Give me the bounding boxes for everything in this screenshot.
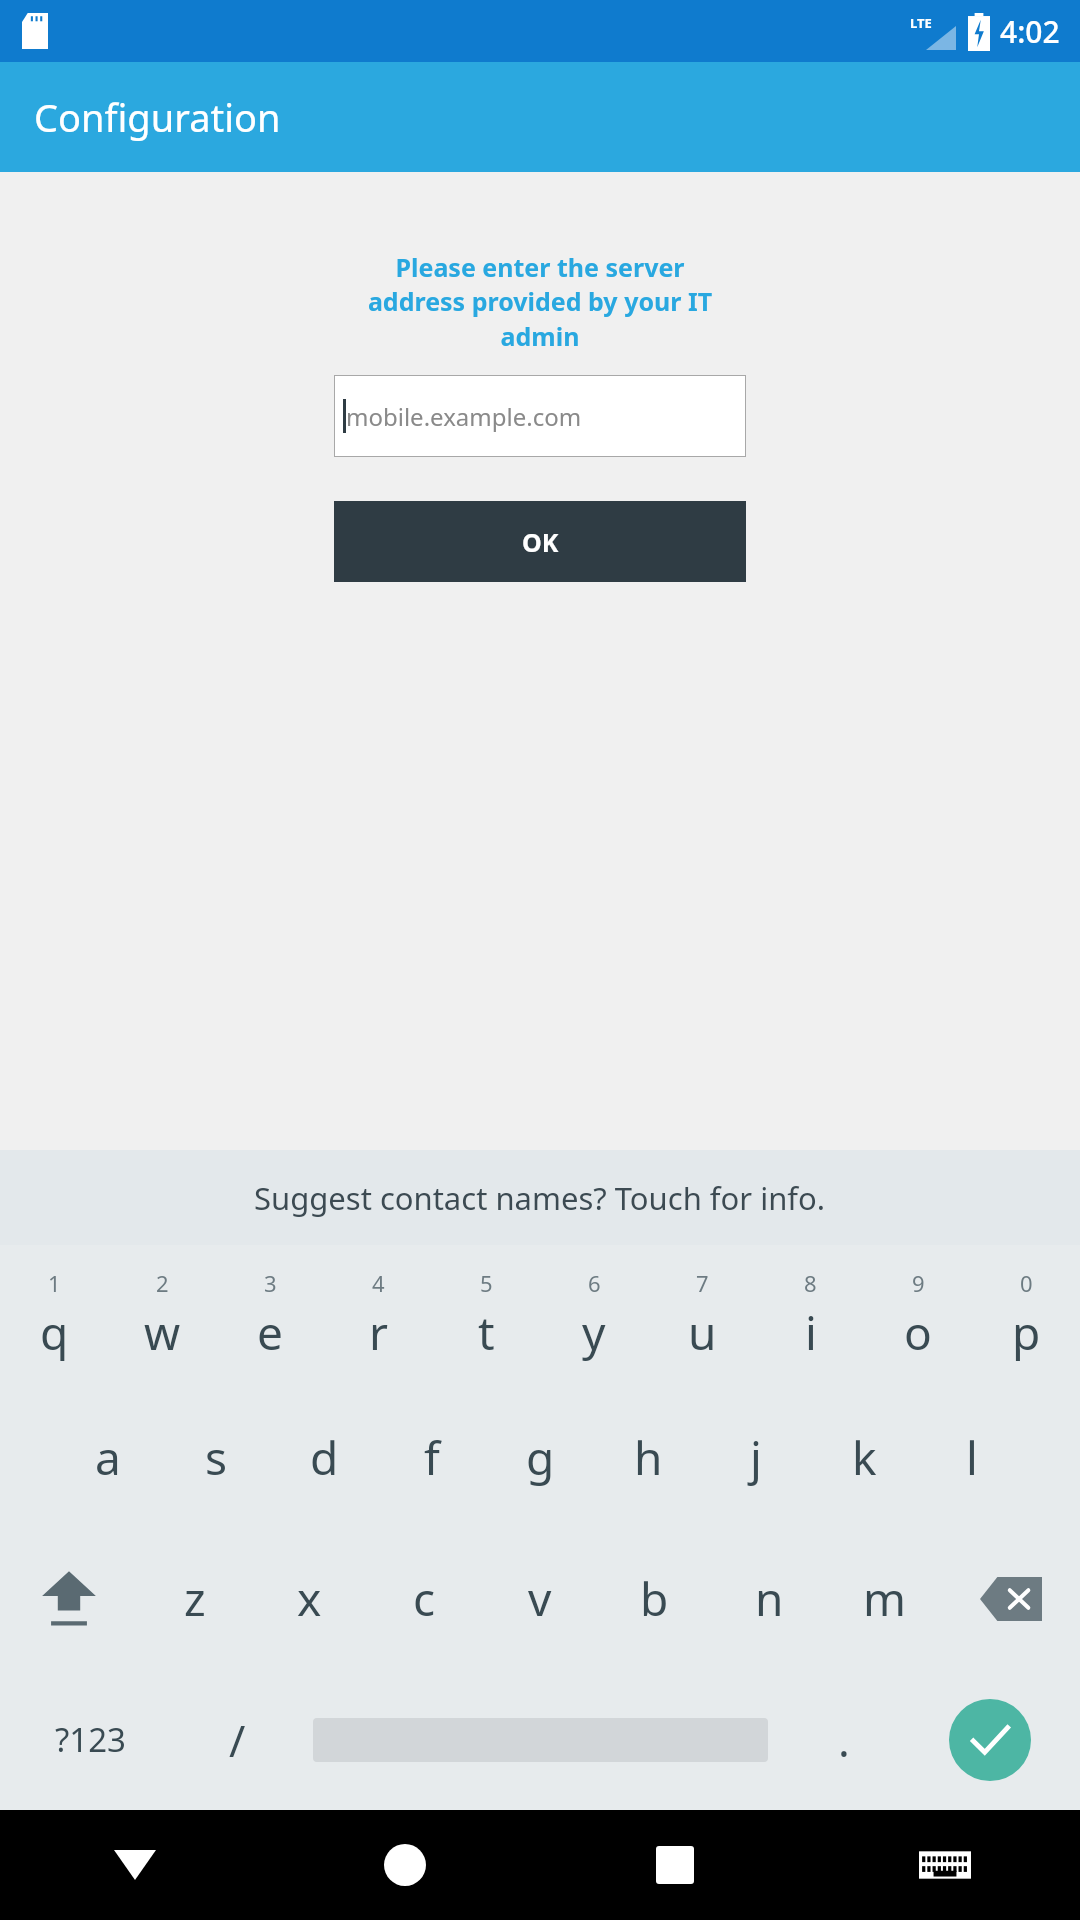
staticText: t bbox=[478, 1301, 495, 1364]
button[interactable]: Space bbox=[293, 1669, 788, 1810]
button[interactable]: ?123 bbox=[0, 1669, 181, 1810]
button[interactable]: z bbox=[137, 1528, 252, 1669]
staticText: r bbox=[369, 1301, 388, 1364]
staticText: w bbox=[144, 1301, 181, 1364]
staticText: m bbox=[863, 1567, 907, 1630]
staticText: d bbox=[310, 1426, 339, 1489]
button[interactable]: Back bbox=[0, 1810, 270, 1920]
staticText: u bbox=[688, 1301, 717, 1364]
button[interactable]: Enter bbox=[900, 1669, 1080, 1810]
staticText: OK bbox=[522, 525, 559, 559]
button[interactable]: 9 bbox=[864, 1245, 972, 1387]
staticText: z bbox=[184, 1567, 206, 1630]
staticText: 4:02 bbox=[1000, 11, 1060, 52]
button[interactable]: . bbox=[788, 1669, 900, 1810]
button[interactable]: 8 bbox=[756, 1245, 864, 1387]
button[interactable]: a bbox=[54, 1387, 162, 1528]
staticText: 2 bbox=[156, 1268, 169, 1298]
staticText: 7 bbox=[696, 1268, 709, 1298]
button[interactable]: n bbox=[712, 1528, 827, 1669]
button[interactable]: j bbox=[702, 1387, 810, 1528]
staticText: mobile.example.com bbox=[346, 400, 582, 433]
button[interactable]: Delete bbox=[942, 1528, 1080, 1669]
button[interactable]: g bbox=[486, 1387, 594, 1528]
staticText: g bbox=[526, 1426, 555, 1489]
button[interactable]: Shift bbox=[0, 1528, 137, 1669]
button[interactable]: Switch keyboard bbox=[810, 1810, 1080, 1920]
button[interactable]: 4 bbox=[324, 1245, 432, 1387]
staticText: 9 bbox=[912, 1268, 925, 1298]
staticText: e bbox=[257, 1301, 283, 1364]
button[interactable]: b bbox=[597, 1528, 712, 1669]
staticText: q bbox=[40, 1301, 69, 1364]
button[interactable]: k bbox=[810, 1387, 918, 1528]
staticText: n bbox=[755, 1567, 784, 1630]
staticText: o bbox=[904, 1301, 932, 1364]
button[interactable]: l bbox=[918, 1387, 1026, 1528]
button[interactable]: x bbox=[252, 1528, 367, 1669]
staticText: p bbox=[1012, 1301, 1041, 1364]
button[interactable]: Suggest contact names? Touch for info. bbox=[0, 1150, 1080, 1245]
button[interactable]: OK bbox=[334, 501, 746, 582]
staticText: s bbox=[205, 1426, 228, 1489]
button[interactable]: s bbox=[162, 1387, 270, 1528]
staticText: 6 bbox=[588, 1268, 601, 1298]
staticText: 4 bbox=[372, 1268, 385, 1298]
staticText: v bbox=[528, 1567, 552, 1630]
staticText: 3 bbox=[264, 1268, 277, 1298]
staticText: k bbox=[852, 1426, 877, 1489]
button[interactable]: Recents bbox=[540, 1810, 810, 1920]
staticText: . bbox=[838, 1710, 850, 1770]
staticText: l bbox=[966, 1426, 978, 1489]
button[interactable]: 7 bbox=[648, 1245, 756, 1387]
staticText: 1 bbox=[48, 1268, 61, 1298]
button[interactable]: 3 bbox=[216, 1245, 324, 1387]
staticText: i bbox=[805, 1301, 817, 1364]
staticText: / bbox=[229, 1710, 246, 1770]
staticText: LTE bbox=[910, 14, 932, 32]
button[interactable]: h bbox=[594, 1387, 702, 1528]
staticText: a bbox=[95, 1426, 121, 1489]
button[interactable]: 6 bbox=[540, 1245, 648, 1387]
staticText: ?123 bbox=[55, 1717, 126, 1762]
staticText: 0 bbox=[1020, 1268, 1033, 1298]
button[interactable]: c bbox=[367, 1528, 482, 1669]
button[interactable]: f bbox=[378, 1387, 486, 1528]
button[interactable]: / bbox=[181, 1669, 293, 1810]
staticText: x bbox=[297, 1567, 322, 1630]
staticText: Please enter the server address provided… bbox=[360, 250, 720, 354]
button[interactable]: 0 bbox=[972, 1245, 1080, 1387]
button[interactable]: Home bbox=[270, 1810, 540, 1920]
staticText: 8 bbox=[804, 1268, 817, 1298]
staticText: h bbox=[634, 1426, 663, 1489]
button[interactable]: d bbox=[270, 1387, 378, 1528]
button[interactable]: mobile.example.com bbox=[334, 375, 746, 457]
staticText: y bbox=[582, 1301, 606, 1364]
button[interactable]: m bbox=[827, 1528, 942, 1669]
staticText: 5 bbox=[480, 1268, 493, 1298]
button[interactable]: 2 bbox=[108, 1245, 216, 1387]
button[interactable]: v bbox=[482, 1528, 597, 1669]
staticText: Configuration bbox=[34, 91, 281, 143]
staticText: b bbox=[640, 1567, 669, 1630]
button[interactable]: 1 bbox=[0, 1245, 108, 1387]
button[interactable]: 5 bbox=[432, 1245, 540, 1387]
staticText: c bbox=[413, 1567, 436, 1630]
staticText: Suggest contact names? Touch for info. bbox=[254, 1177, 826, 1219]
staticText: j bbox=[750, 1426, 762, 1489]
staticText: f bbox=[424, 1426, 440, 1489]
